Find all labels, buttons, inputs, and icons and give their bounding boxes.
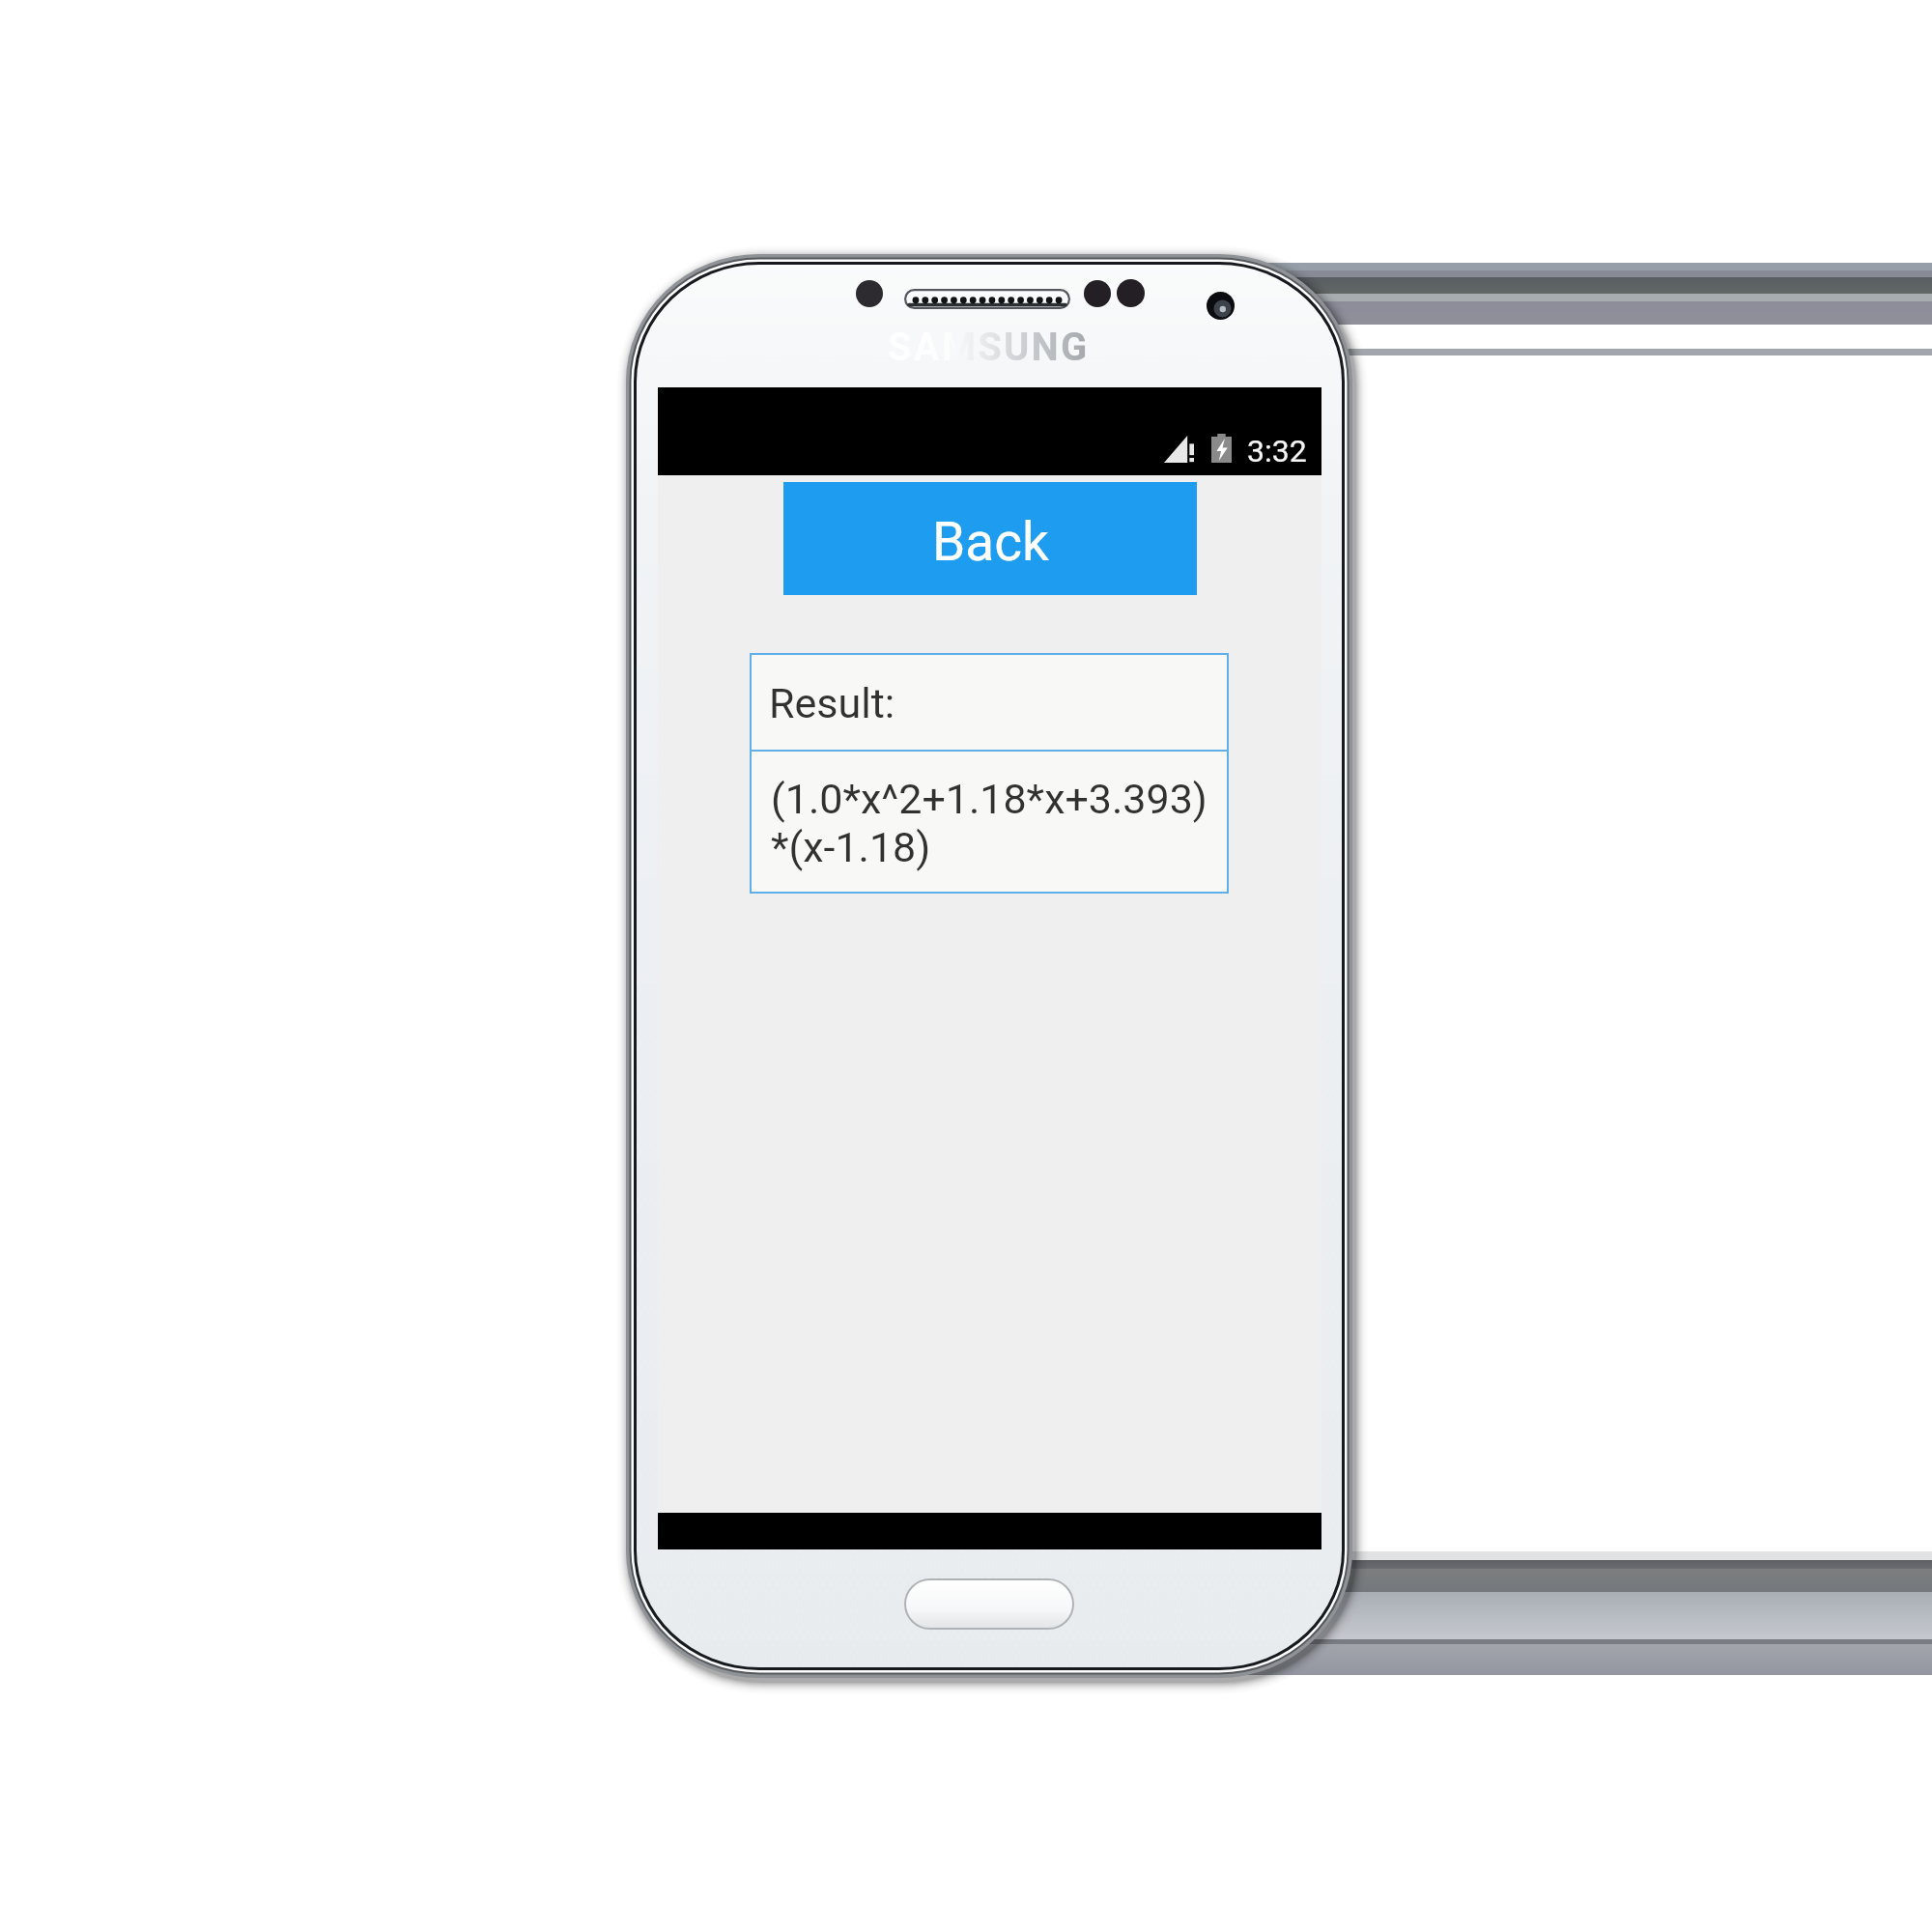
staticText: 3:32 (1247, 433, 1307, 469)
staticText: SAMSUNG (888, 325, 1090, 369)
staticText: (1.0*x^2+1.18*x+3.393) *(x-1.18) (771, 775, 1207, 871)
staticText: Result: (769, 679, 895, 727)
staticText: Back (932, 511, 1049, 573)
button[interactable]: Home (906, 1580, 1072, 1628)
button[interactable]: Back (783, 482, 1197, 595)
